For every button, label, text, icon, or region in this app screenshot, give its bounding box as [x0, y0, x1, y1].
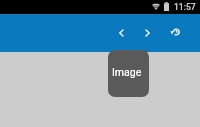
staticText: Image	[112, 66, 142, 78]
button[interactable]: Next	[136, 21, 160, 45]
staticText: 11:57	[174, 2, 196, 12]
button[interactable]: History	[163, 20, 187, 44]
button[interactable]: Previous	[109, 21, 133, 45]
button[interactable]: Image	[108, 50, 149, 97]
